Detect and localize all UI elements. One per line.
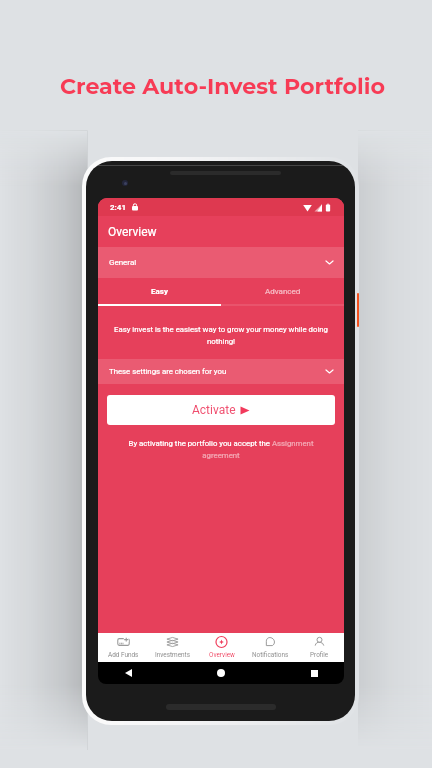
staticText: Overview	[108, 225, 157, 239]
button[interactable]: General	[98, 247, 344, 278]
staticText: These settings are chosen for you	[109, 367, 227, 376]
button[interactable]: Overview	[197, 633, 246, 662]
button[interactable]: Add Funds	[98, 633, 148, 662]
staticText: 2:41	[110, 203, 127, 212]
button[interactable]: Profile	[295, 633, 344, 662]
button[interactable]: Investments	[148, 633, 197, 662]
button[interactable]: Home	[213, 665, 229, 681]
staticText: Investments	[155, 651, 191, 659]
staticText: Notifications	[252, 651, 289, 659]
staticText: Overview	[209, 651, 235, 659]
button[interactable]: Notifications	[246, 633, 295, 662]
staticText: Profile	[310, 651, 329, 659]
button[interactable]: Activate	[107, 395, 335, 425]
staticText: Activate	[192, 403, 236, 417]
staticText: Easy	[151, 287, 168, 296]
staticText: Advanced	[265, 287, 301, 296]
button[interactable]: Recent apps	[306, 665, 322, 681]
staticText: By activating the portfolio you accept t…	[120, 439, 322, 460]
button[interactable]: Back	[120, 665, 136, 681]
staticText: Create Auto-Invest Portfolio	[60, 73, 385, 100]
staticText: Add Funds	[108, 651, 139, 659]
staticText: Easy invest is the easiest way to grow y…	[111, 325, 331, 346]
button[interactable]: These settings are chosen for you	[98, 359, 344, 384]
staticText: General	[109, 258, 137, 267]
button[interactable]: Advanced	[221, 278, 344, 304]
button[interactable]: Easy	[98, 278, 221, 304]
